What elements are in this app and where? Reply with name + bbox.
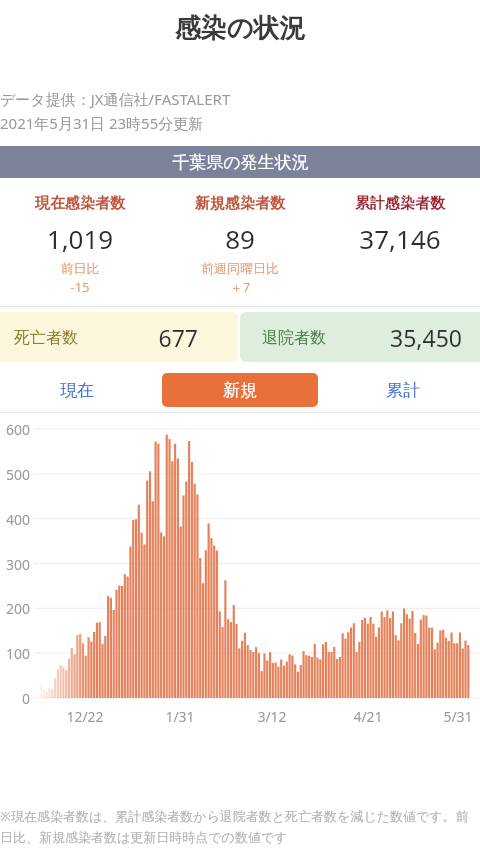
staticText: 累計感染者数: [320, 194, 480, 213]
staticText: 累計: [386, 380, 420, 401]
staticText: 前日比: [0, 260, 160, 276]
staticText: 1/31: [155, 707, 205, 726]
button[interactable]: 累計: [326, 368, 480, 412]
staticText: ※現在感染者数は、累計感染者数から退院者数と死亡者数を減じた数値です。前日比、新…: [0, 807, 480, 846]
staticText: 新規感染者数: [160, 194, 320, 213]
staticText: 600: [0, 420, 30, 439]
staticText: 89: [160, 221, 320, 256]
staticText: 1,019: [0, 221, 160, 256]
staticText: 500: [0, 465, 30, 484]
staticText: 677: [158, 322, 198, 353]
staticText: 2021年5月31日 23時55分更新: [0, 113, 480, 133]
staticText: 0: [0, 689, 30, 708]
staticText: 新規: [223, 380, 257, 401]
staticText: データ提供：JX通信社/FASTALERT: [0, 89, 480, 109]
staticText: 200: [0, 599, 30, 618]
staticText: 300: [0, 555, 30, 574]
staticText: 退院者数: [262, 328, 326, 348]
staticText: 37,146: [320, 221, 480, 256]
staticText: 千葉県の発生状況: [172, 152, 309, 173]
staticText: 100: [0, 644, 30, 663]
staticText: 現在: [60, 380, 94, 401]
staticText: ＋7: [160, 278, 320, 296]
button[interactable]: 累計感染者数: [320, 194, 480, 256]
staticText: 5/31: [433, 707, 480, 726]
button[interactable]: 新規: [162, 373, 318, 407]
staticText: 3/12: [247, 707, 297, 726]
staticText: 現在感染者数: [0, 194, 160, 213]
staticText: 35,450: [390, 322, 462, 353]
staticText: 死亡者数: [14, 328, 78, 348]
staticText: 前週同曜日比: [160, 260, 320, 276]
staticText: 12/22: [60, 707, 110, 726]
button[interactable]: 退院者数: [240, 312, 480, 362]
staticText: 400: [0, 510, 30, 529]
staticText: 4/21: [343, 707, 393, 726]
button[interactable]: 新規感染者数: [160, 194, 320, 296]
button[interactable]: 現在感染者数: [0, 194, 160, 296]
button[interactable]: 死亡者数: [0, 312, 238, 362]
button[interactable]: 現在: [0, 368, 154, 412]
staticText: -15: [0, 278, 160, 296]
staticText: 感染の状況: [0, 12, 480, 45]
